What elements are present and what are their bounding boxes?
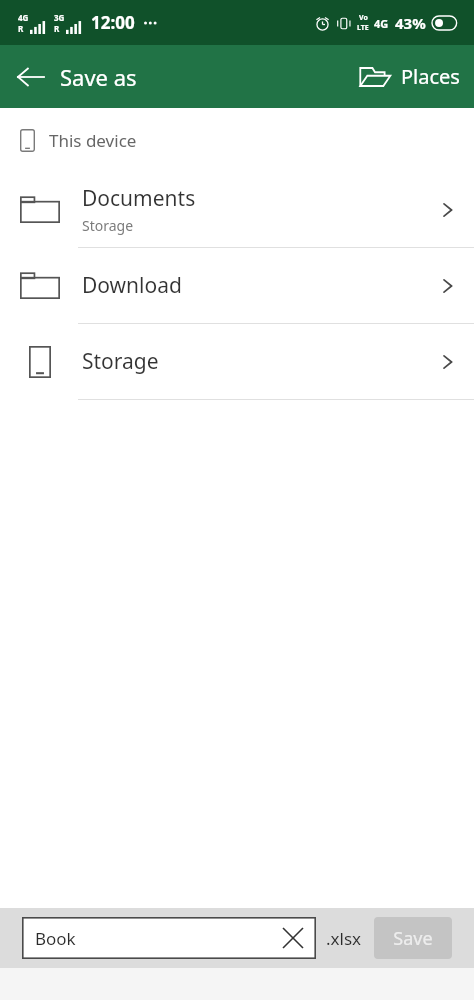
staticText: R: [18, 23, 24, 34]
staticText: Storage: [82, 216, 134, 235]
staticText: Save as: [60, 62, 137, 92]
staticText: Storage: [82, 347, 440, 376]
staticText: .xlsx: [326, 927, 362, 950]
staticText: R: [54, 23, 60, 34]
button[interactable]: Download: [0, 248, 474, 323]
staticText: Book: [35, 927, 76, 950]
button[interactable]: Save: [374, 917, 452, 959]
staticText: Vo: [359, 13, 368, 23]
staticText: 12:00: [91, 11, 135, 34]
staticText: Places: [401, 63, 460, 90]
button[interactable]: Back: [0, 52, 151, 102]
button[interactable]: Book: [22, 917, 316, 959]
staticText: Download: [82, 271, 182, 300]
button[interactable]: Storage: [0, 324, 474, 399]
staticText: 4G: [374, 16, 389, 31]
button[interactable]: Documents: [0, 172, 474, 247]
staticText: This device: [49, 129, 137, 152]
button[interactable]: Places: [345, 55, 474, 98]
other: Back: [14, 60, 48, 94]
staticText: 43%: [395, 13, 426, 33]
staticText: Documents: [82, 184, 196, 213]
button[interactable]: Clear: [278, 923, 308, 953]
staticText: 3G: [54, 12, 65, 23]
staticText: 4G: [18, 12, 29, 23]
staticText: Save: [393, 926, 433, 951]
staticText: LTE: [357, 23, 369, 33]
other: Places: [359, 64, 391, 89]
